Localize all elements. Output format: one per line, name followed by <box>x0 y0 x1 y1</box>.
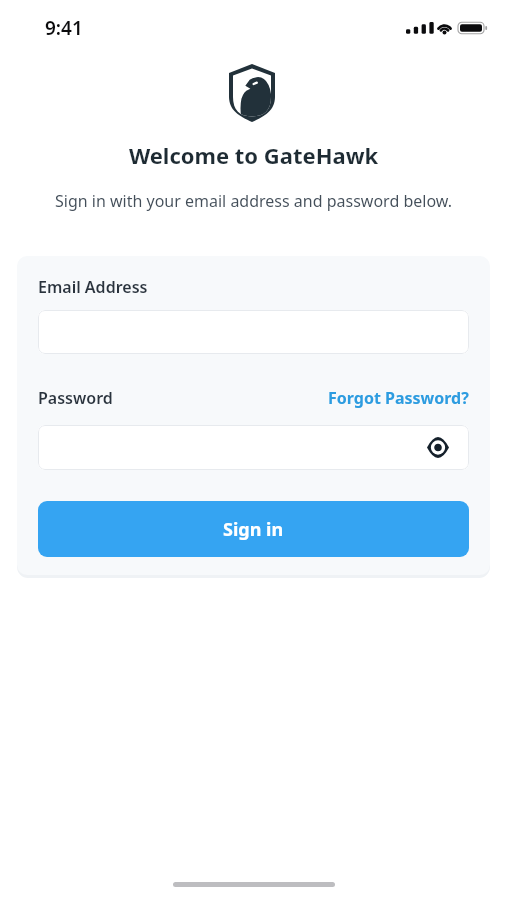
staticText: Email Address <box>38 276 148 298</box>
staticText: Welcome to GateHawk <box>0 140 507 170</box>
button[interactable] <box>38 425 469 470</box>
staticText: Sign in <box>223 517 284 542</box>
staticText: 9:41 <box>45 15 83 41</box>
staticText: Password <box>38 387 113 409</box>
button[interactable] <box>427 437 449 458</box>
button[interactable]: Sign in <box>38 501 469 557</box>
staticText: Sign in with your email address and pass… <box>0 190 507 212</box>
button[interactable]: Forgot Password? <box>328 387 469 409</box>
button[interactable] <box>38 310 469 354</box>
